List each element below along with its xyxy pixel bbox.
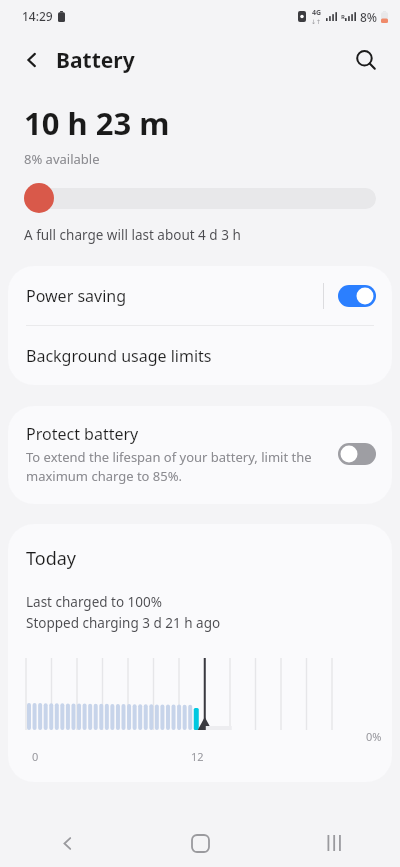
staticText: 0% [366, 729, 382, 744]
staticText: Last charged to 100% [26, 593, 162, 611]
staticText: 0 [32, 749, 39, 764]
staticText: Protect battery [26, 423, 139, 445]
button[interactable]: Home [134, 819, 267, 867]
staticText: 4G [312, 8, 322, 18]
staticText: ↓↑ [311, 18, 322, 25]
button[interactable]: Recents [267, 819, 400, 867]
staticText: A full charge will last about 4 d 3 h [24, 226, 241, 244]
staticText: Today [26, 546, 76, 571]
button[interactable]: Back [0, 819, 134, 867]
staticText: 12 [191, 749, 204, 764]
staticText: 8% available [24, 150, 100, 168]
staticText: 8% [360, 9, 378, 25]
staticText: Battery [56, 46, 135, 75]
staticText: Background usage limits [26, 345, 212, 367]
button[interactable]: Power saving [8, 266, 392, 325]
button[interactable]: Protect battery [8, 406, 392, 504]
button[interactable]: Power saving toggle [338, 285, 376, 307]
staticText: R [341, 13, 345, 21]
button[interactable]: Back [12, 40, 52, 80]
button[interactable]: Protect battery toggle [338, 443, 376, 465]
staticText: Stopped charging 3 d 21 h ago [26, 614, 221, 632]
button[interactable]: Background usage limits [8, 326, 392, 385]
staticText: 14:29 [22, 8, 53, 24]
staticText: Power saving [26, 285, 323, 307]
staticText: 10 h 23 m [24, 102, 170, 144]
staticText: To extend the lifespan of your battery, … [26, 448, 330, 485]
button[interactable]: Today [8, 524, 392, 782]
button[interactable]: Search [346, 40, 386, 80]
